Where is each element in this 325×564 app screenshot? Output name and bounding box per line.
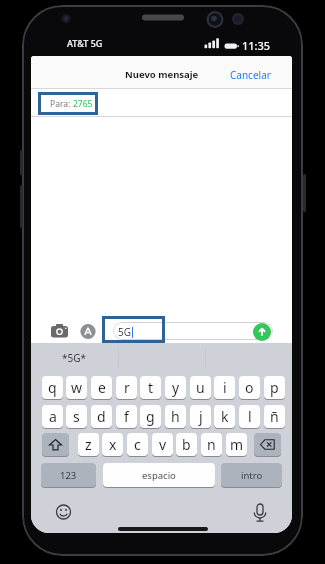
staticText: q bbox=[48, 378, 57, 397]
staticText: Para: bbox=[50, 98, 73, 110]
staticText: w bbox=[71, 378, 83, 397]
button[interactable]: i bbox=[214, 376, 235, 399]
staticText: Cancelar bbox=[230, 68, 271, 82]
button[interactable]: k bbox=[214, 405, 235, 428]
button[interactable]: 5G bbox=[113, 322, 273, 340]
button[interactable]: g bbox=[140, 405, 161, 428]
staticText: t bbox=[148, 378, 154, 397]
button[interactable]: *5G* bbox=[31, 343, 118, 373]
staticText: espacio bbox=[142, 469, 176, 482]
button[interactable]: s bbox=[66, 405, 87, 428]
staticText: 5G bbox=[118, 325, 131, 339]
button[interactable]: Cancelar bbox=[230, 68, 271, 82]
staticText: k bbox=[221, 407, 229, 426]
button[interactable]: t bbox=[140, 376, 161, 399]
button[interactable]: b bbox=[176, 433, 197, 456]
staticText: y bbox=[172, 378, 180, 397]
staticText: 11:35 bbox=[242, 38, 271, 53]
staticText: l bbox=[248, 407, 252, 426]
staticText: d bbox=[97, 407, 106, 426]
staticText: s bbox=[73, 407, 80, 426]
button[interactable]: p bbox=[264, 376, 285, 399]
button[interactable]: x bbox=[102, 433, 123, 456]
button[interactable]: a bbox=[42, 405, 63, 428]
staticText: z bbox=[85, 435, 92, 454]
button[interactable]: w bbox=[66, 376, 87, 399]
button[interactable]: y bbox=[165, 376, 186, 399]
button[interactable]: e bbox=[91, 376, 112, 399]
button[interactable]: j bbox=[190, 405, 211, 428]
staticText: h bbox=[171, 407, 180, 426]
staticText: AT&T 5G bbox=[67, 37, 103, 49]
staticText: i bbox=[223, 378, 227, 397]
button[interactable]: d bbox=[91, 405, 112, 428]
button[interactable]: v bbox=[152, 433, 173, 456]
staticText: a bbox=[49, 407, 57, 426]
button[interactable]: o bbox=[239, 376, 260, 399]
button[interactable] bbox=[42, 433, 69, 456]
staticText: o bbox=[245, 378, 254, 397]
button[interactable]: m bbox=[226, 433, 247, 456]
button[interactable]: z bbox=[78, 433, 99, 456]
staticText: r bbox=[124, 378, 130, 397]
button[interactable]: ñ bbox=[264, 405, 285, 428]
staticText: m bbox=[230, 435, 244, 454]
staticText: n bbox=[207, 435, 216, 454]
staticText: j bbox=[199, 407, 203, 426]
staticText: p bbox=[270, 378, 279, 397]
staticText: b bbox=[182, 435, 191, 454]
staticText: u bbox=[196, 378, 205, 397]
staticText: x bbox=[109, 435, 117, 454]
button[interactable]: espacio bbox=[103, 463, 215, 487]
button[interactable]: r bbox=[116, 376, 137, 399]
staticText: ñ bbox=[270, 407, 279, 426]
button[interactable]: f bbox=[116, 405, 137, 428]
staticText: Nuevo mensaje bbox=[125, 68, 199, 81]
staticText: 123 bbox=[60, 469, 77, 482]
button[interactable]: h bbox=[165, 405, 186, 428]
button[interactable] bbox=[253, 323, 271, 341]
staticText: c bbox=[134, 435, 141, 454]
staticText: *5G* bbox=[62, 351, 87, 365]
button[interactable]: 123 bbox=[41, 463, 96, 487]
staticText: 2765 bbox=[73, 98, 93, 110]
button[interactable]: u bbox=[190, 376, 211, 399]
button[interactable]: Para: bbox=[31, 89, 292, 115]
button[interactable] bbox=[254, 433, 281, 456]
button[interactable]: n bbox=[201, 433, 222, 456]
button[interactable]: l bbox=[239, 405, 260, 428]
staticText: f bbox=[124, 407, 129, 426]
staticText: e bbox=[98, 378, 106, 397]
button[interactable]: intro bbox=[221, 463, 282, 487]
button[interactable]: q bbox=[42, 376, 63, 399]
staticText: g bbox=[146, 407, 155, 426]
staticText: intro bbox=[241, 469, 263, 482]
button[interactable]: c bbox=[127, 433, 148, 456]
staticText: v bbox=[159, 435, 167, 454]
